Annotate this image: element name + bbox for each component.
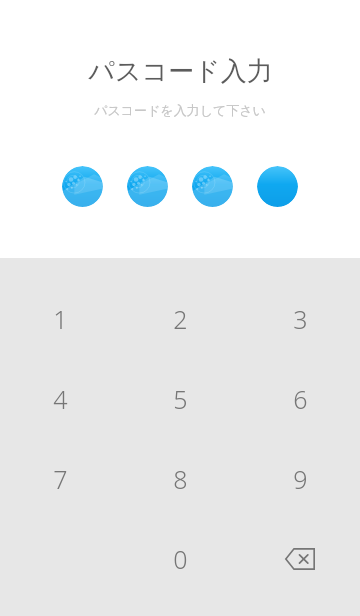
button[interactable]: 8 [120, 439, 240, 519]
staticText: 9 [293, 462, 308, 496]
staticText: 2 [173, 302, 188, 336]
staticText: 7 [53, 462, 68, 496]
staticText: 6 [293, 382, 308, 416]
staticText: 8 [173, 462, 188, 496]
staticText: 0 [173, 542, 188, 576]
staticText: 1 [53, 302, 68, 336]
button[interactable]: 3 [240, 279, 360, 359]
staticText: パスコードを入力して下さい [94, 102, 266, 118]
button[interactable]: 0 [120, 519, 240, 599]
button[interactable]: Backspace [240, 519, 360, 599]
staticText: パスコード入力 [88, 55, 273, 88]
button[interactable]: 6 [240, 359, 360, 439]
button[interactable]: 7 [0, 439, 120, 519]
button[interactable]: 5 [120, 359, 240, 439]
button[interactable]: 2 [120, 279, 240, 359]
button[interactable]: 4 [0, 359, 120, 439]
staticText: 3 [293, 302, 308, 336]
staticText: 4 [53, 382, 68, 416]
staticText: 5 [173, 382, 188, 416]
button[interactable]: 9 [240, 439, 360, 519]
button[interactable]: 1 [0, 279, 120, 359]
